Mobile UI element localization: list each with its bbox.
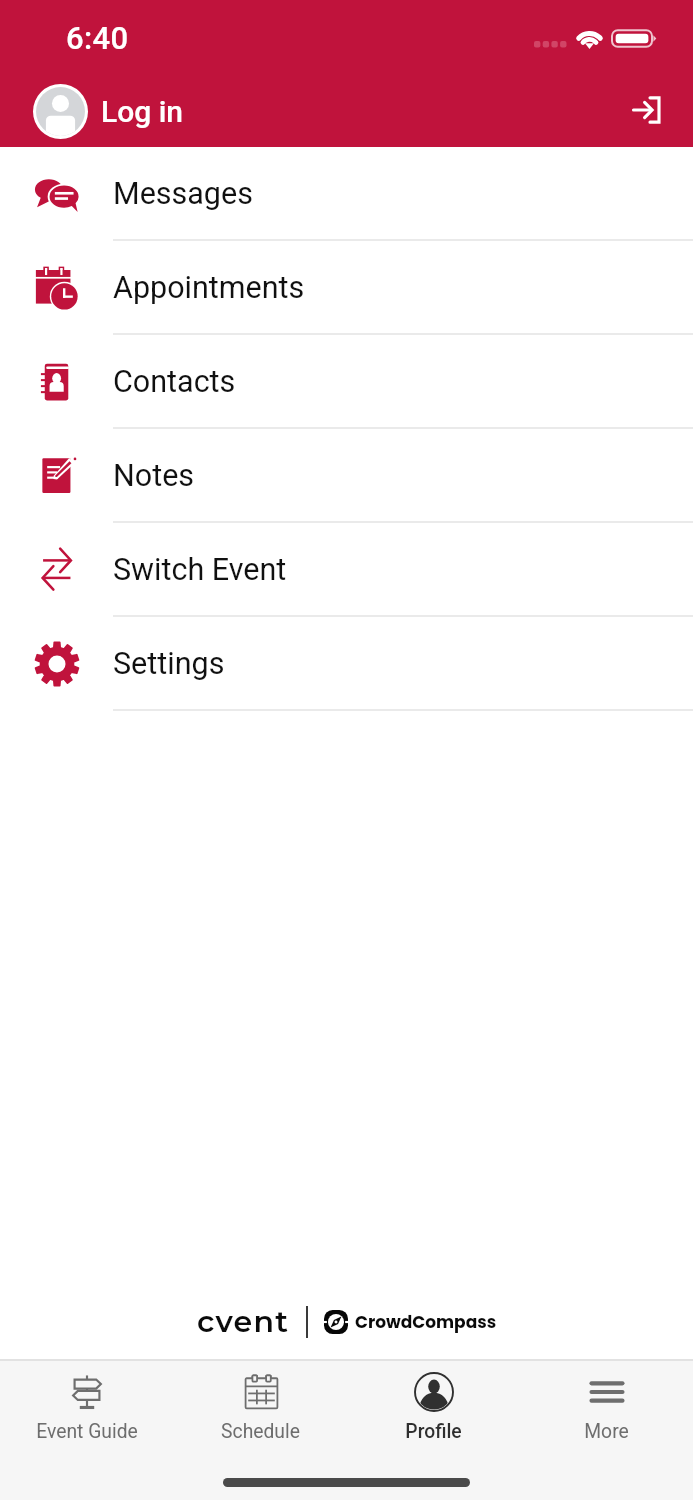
button[interactable]: Profile: [347, 1361, 520, 1453]
staticText: Schedule: [221, 1420, 300, 1443]
button[interactable]: Appointments: [0, 241, 693, 335]
button[interactable]: Settings: [0, 617, 693, 711]
staticText: More: [584, 1420, 629, 1443]
button[interactable]: Log in: [610, 74, 683, 146]
staticText: Event Guide: [36, 1420, 138, 1443]
button[interactable]: Notes: [0, 429, 693, 523]
button[interactable]: More: [520, 1361, 693, 1453]
staticText: cvent: [197, 1303, 290, 1340]
staticText: Settings: [113, 646, 225, 682]
staticText: Appointments: [113, 270, 305, 306]
button[interactable]: Contacts: [0, 335, 693, 429]
button[interactable]: Log in: [19, 75, 198, 147]
staticText: Log in: [101, 94, 184, 129]
button[interactable]: Schedule: [174, 1361, 347, 1453]
staticText: 6:40: [66, 20, 129, 56]
staticText: Notes: [113, 458, 195, 494]
staticText: CrowdCompass: [355, 1310, 497, 1334]
staticText: Messages: [113, 176, 253, 212]
button[interactable]: Messages: [0, 147, 693, 241]
staticText: Profile: [405, 1420, 462, 1443]
button[interactable]: Event Guide: [0, 1361, 174, 1453]
staticText: Contacts: [113, 364, 236, 400]
button[interactable]: Switch Event: [0, 523, 693, 617]
staticText: Switch Event: [113, 552, 287, 588]
